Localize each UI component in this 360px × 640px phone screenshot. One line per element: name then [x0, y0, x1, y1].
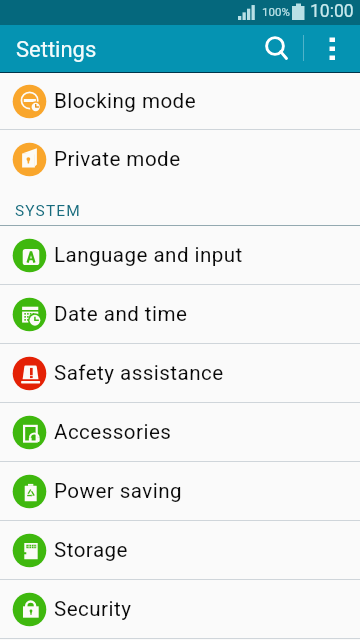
staticText: Language and input	[54, 243, 243, 267]
staticText: Accessories	[54, 420, 172, 444]
button[interactable]: Power saving	[0, 462, 360, 520]
staticText: Private mode	[54, 147, 181, 171]
staticText: SYSTEM	[15, 202, 81, 220]
button[interactable]: Date and time	[0, 285, 360, 343]
button[interactable]: Storage	[0, 521, 360, 579]
staticText: 100%	[262, 5, 290, 18]
staticText: Date and time	[54, 302, 188, 326]
button[interactable]: Private mode	[0, 130, 360, 188]
staticText: Settings	[16, 37, 97, 63]
button[interactable]: Blocking mode	[0, 73, 360, 129]
staticText: Safety assistance	[54, 361, 224, 385]
button[interactable]: Accessories	[0, 403, 360, 461]
button[interactable]: Safety assistance	[0, 344, 360, 402]
staticText: Power saving	[54, 479, 183, 503]
staticText: Storage	[54, 538, 128, 562]
button[interactable]: Security	[0, 580, 360, 638]
staticText: Security	[54, 597, 132, 621]
staticText: 10:00	[310, 1, 354, 22]
button[interactable]: More options	[310, 25, 354, 72]
button[interactable]: Language and input	[0, 226, 360, 284]
button[interactable]: Search	[253, 25, 297, 72]
staticText: Blocking mode	[54, 89, 197, 113]
